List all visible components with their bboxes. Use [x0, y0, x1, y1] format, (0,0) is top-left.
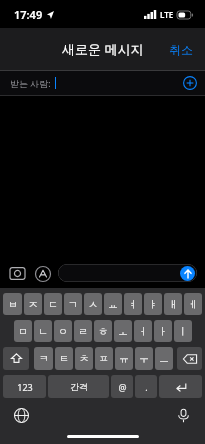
staticText: 123 — [17, 381, 33, 393]
button[interactable]: 간격 — [48, 375, 109, 398]
staticText: 새로운 메시지 — [62, 40, 144, 58]
button[interactable]: Backspace — [177, 347, 202, 370]
staticText: ㅏ — [158, 325, 168, 338]
staticText: ㅕ — [128, 298, 138, 311]
button[interactable]: Add contact — [183, 76, 197, 90]
button[interactable]: 취소 — [157, 34, 205, 65]
staticText: ㅓ — [138, 325, 148, 338]
button[interactable]: ㅡ — [155, 347, 173, 370]
button[interactable]: ㅛ — [104, 293, 122, 315]
button[interactable]: ㄴ — [34, 320, 52, 342]
button[interactable]: @ — [111, 375, 133, 398]
staticText: ㅎ — [98, 325, 108, 338]
staticText: ㅔ — [188, 298, 198, 311]
button[interactable]: ㅏ — [154, 320, 172, 342]
staticText: ㅌ — [59, 352, 69, 365]
button[interactable]: ㄹ — [74, 320, 92, 342]
staticText: ㅠ — [119, 352, 129, 365]
staticText: ㄷ — [48, 298, 58, 311]
button[interactable]: Return — [159, 375, 202, 398]
staticText: ㄹ — [78, 325, 88, 338]
button[interactable]: App Store — [33, 264, 52, 283]
button[interactable]: ㅇ — [54, 320, 72, 342]
staticText: ㅐ — [168, 298, 178, 311]
button[interactable]: ㅜ — [135, 347, 153, 370]
button[interactable]: ㅕ — [124, 293, 142, 315]
button[interactable]: ㅋ — [34, 347, 53, 370]
button[interactable]: ㅅ — [84, 293, 102, 315]
button[interactable]: ㅎ — [94, 320, 112, 342]
button[interactable]: ㅑ — [144, 293, 162, 315]
button[interactable]: ㅈ — [24, 293, 42, 315]
button[interactable]: Shift — [3, 347, 29, 370]
staticText: 받는 사람: — [10, 77, 51, 89]
button[interactable]: ㅁ — [14, 320, 32, 342]
staticText: 취소 — [169, 42, 193, 57]
button[interactable]: Send — [58, 264, 197, 282]
button[interactable]: ㅂ — [3, 293, 22, 315]
button[interactable]: ㅊ — [75, 347, 93, 370]
staticText: ㅇ — [58, 325, 68, 338]
staticText: ㅋ — [39, 352, 49, 365]
button[interactable]: . — [135, 375, 157, 398]
staticText: ㅈ — [28, 298, 38, 311]
button[interactable]: Camera — [8, 264, 27, 283]
staticText: ㄴ — [38, 325, 48, 338]
staticText: ㄱ — [68, 298, 78, 311]
staticText: LTE — [160, 9, 174, 20]
staticText: . — [145, 381, 148, 393]
button[interactable]: ㅣ — [174, 320, 192, 342]
staticText: 17:49 — [14, 7, 43, 22]
staticText: ㅅ — [88, 298, 98, 311]
staticText: @ — [118, 381, 127, 393]
staticText: ㅗ — [118, 325, 128, 338]
staticText: 간격 — [70, 381, 88, 392]
button[interactable]: ㅍ — [95, 347, 113, 370]
staticText: ㅡ — [159, 352, 169, 365]
staticText: ㅜ — [139, 352, 149, 365]
button[interactable]: ㄱ — [64, 293, 82, 315]
button[interactable]: ㅐ — [164, 293, 182, 315]
button[interactable]: ㄷ — [44, 293, 62, 315]
staticText: ㅍ — [99, 352, 109, 365]
button[interactable]: ㅓ — [134, 320, 152, 342]
button[interactable]: Dictation — [176, 408, 191, 423]
button[interactable]: ㅗ — [114, 320, 132, 342]
staticText: ㅛ — [108, 298, 118, 311]
button[interactable]: ㅌ — [55, 347, 73, 370]
button[interactable]: 123 — [3, 375, 46, 398]
staticText: ㅊ — [79, 352, 89, 365]
button[interactable]: Send — [180, 266, 195, 281]
button[interactable]: ㅔ — [184, 293, 202, 315]
button[interactable]: ㅠ — [115, 347, 133, 370]
staticText: ㅣ — [178, 325, 188, 338]
staticText: ㅑ — [148, 298, 158, 311]
staticText: ㅁ — [18, 325, 28, 338]
button[interactable]: Change keyboard — [14, 408, 29, 423]
staticText: ㅂ — [8, 298, 18, 311]
